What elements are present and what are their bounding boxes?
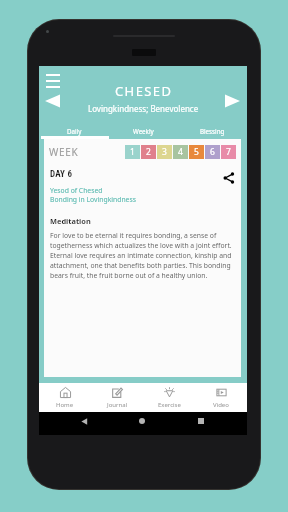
button[interactable]: Next [225,94,240,108]
staticText: CHESED [115,82,173,100]
button[interactable]: Menu [46,74,61,90]
button[interactable]: Exercise [143,383,195,412]
button[interactable]: 4 [173,145,188,159]
staticText: Meditation [50,216,91,226]
staticText: 1 [130,146,135,158]
button[interactable]: 5 [189,145,204,159]
staticText: DAY 6 [50,169,73,180]
staticText: Daily [67,127,82,135]
button[interactable]: 6 [205,145,220,159]
button[interactable]: 7 [221,145,236,159]
button[interactable]: Share [223,172,235,184]
staticText: 5 [194,146,199,158]
staticText: Blessing [200,127,225,135]
staticText: Weekly [133,127,154,135]
staticText: For love to be eternal it requires bondi… [50,231,235,280]
staticText: 6 [210,146,215,158]
staticText: Lovingkindness; Benevolence [88,103,199,114]
staticText: Exercise [158,401,181,409]
button[interactable]: Video [195,383,247,412]
button[interactable]: Home [39,383,91,412]
staticText: 3 [162,146,167,158]
staticText: Journal [107,401,128,409]
button[interactable]: Daily [39,122,109,139]
button[interactable]: Blessing [178,122,247,139]
button[interactable]: Previous [45,94,60,108]
staticText: Bonding in Lovingkindness [50,195,136,204]
button[interactable]: Journal [91,383,143,412]
button[interactable]: Home [139,418,145,424]
staticText: 2 [146,146,151,158]
button[interactable]: Back [80,417,89,426]
button[interactable]: 1 [125,145,140,159]
staticText: 4 [178,146,183,158]
button[interactable]: 3 [157,145,172,159]
staticText: Home [56,401,74,409]
staticText: 7 [226,146,231,158]
button[interactable]: 2 [141,145,156,159]
staticText: Yesod of Chesed [50,186,103,195]
button[interactable]: Weekly [109,122,178,139]
staticText: Video [213,401,229,409]
staticText: WEEK [49,145,79,159]
